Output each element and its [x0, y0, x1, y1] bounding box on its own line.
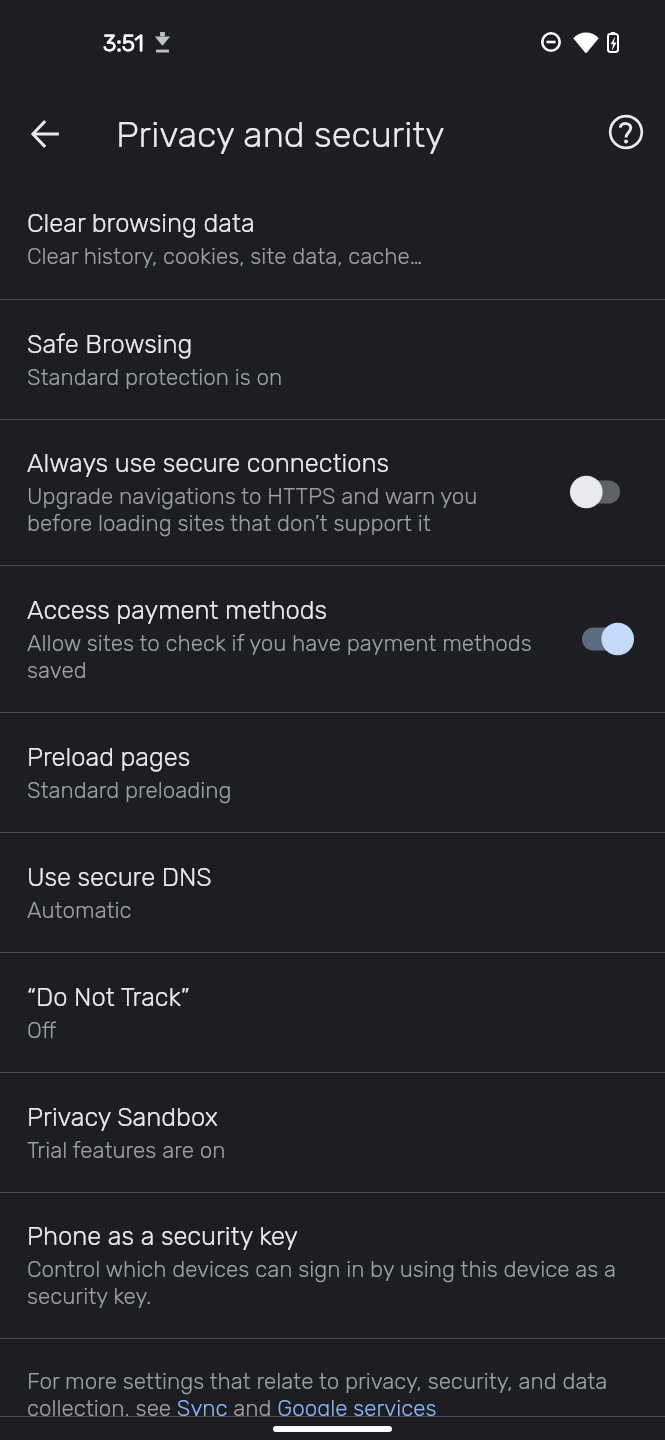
staticText: Allow sites to check if you have payment… — [27, 630, 535, 684]
staticText: Upgrade navigations to HTTPS and warn yo… — [27, 483, 535, 537]
staticText: Use secure DNS — [27, 862, 212, 892]
button[interactable]: Preload pages — [0, 713, 665, 832]
button[interactable]: Clear browsing data — [0, 179, 665, 299]
button[interactable]: Back — [17, 105, 74, 162]
staticText: Access payment methods — [27, 595, 328, 625]
staticText: Safe Browsing — [27, 329, 193, 359]
button[interactable]: “Do Not Track” — [0, 953, 665, 1072]
staticText: 3:51 — [103, 29, 144, 56]
staticText: Always use secure connections — [27, 448, 390, 478]
button[interactable]: Phone as a security key — [0, 1193, 665, 1338]
staticText: Privacy Sandbox — [27, 1102, 219, 1132]
staticText: Control which devices can sign in by usi… — [27, 1256, 637, 1310]
staticText: “Do Not Track” — [27, 982, 190, 1012]
staticText: Trial features are on — [27, 1137, 226, 1164]
staticText: Standard preloading — [27, 777, 232, 804]
button[interactable]: Help — [597, 103, 654, 160]
staticText: Clear browsing data — [27, 208, 255, 238]
button[interactable]: Access payment methods toggle — [582, 622, 634, 656]
staticText: For more settings that relate to privacy… — [27, 1368, 637, 1416]
button[interactable]: Use secure DNS — [0, 833, 665, 952]
staticText: Standard protection is on — [27, 364, 283, 391]
staticText: Off — [27, 1017, 57, 1044]
button[interactable]: Always use secure connections — [0, 420, 665, 565]
staticText: Preload pages — [27, 742, 191, 772]
staticText: Privacy and security — [116, 113, 445, 156]
button[interactable]: Access payment methods — [0, 566, 665, 712]
button[interactable]: Safe Browsing — [0, 300, 665, 419]
button[interactable]: Always use secure connections toggle — [568, 475, 620, 509]
staticText: Clear history, cookies, site data, cache… — [27, 243, 423, 270]
staticText: Phone as a security key — [27, 1221, 298, 1251]
staticText: Automatic — [27, 897, 132, 924]
button[interactable]: Privacy Sandbox — [0, 1073, 665, 1192]
